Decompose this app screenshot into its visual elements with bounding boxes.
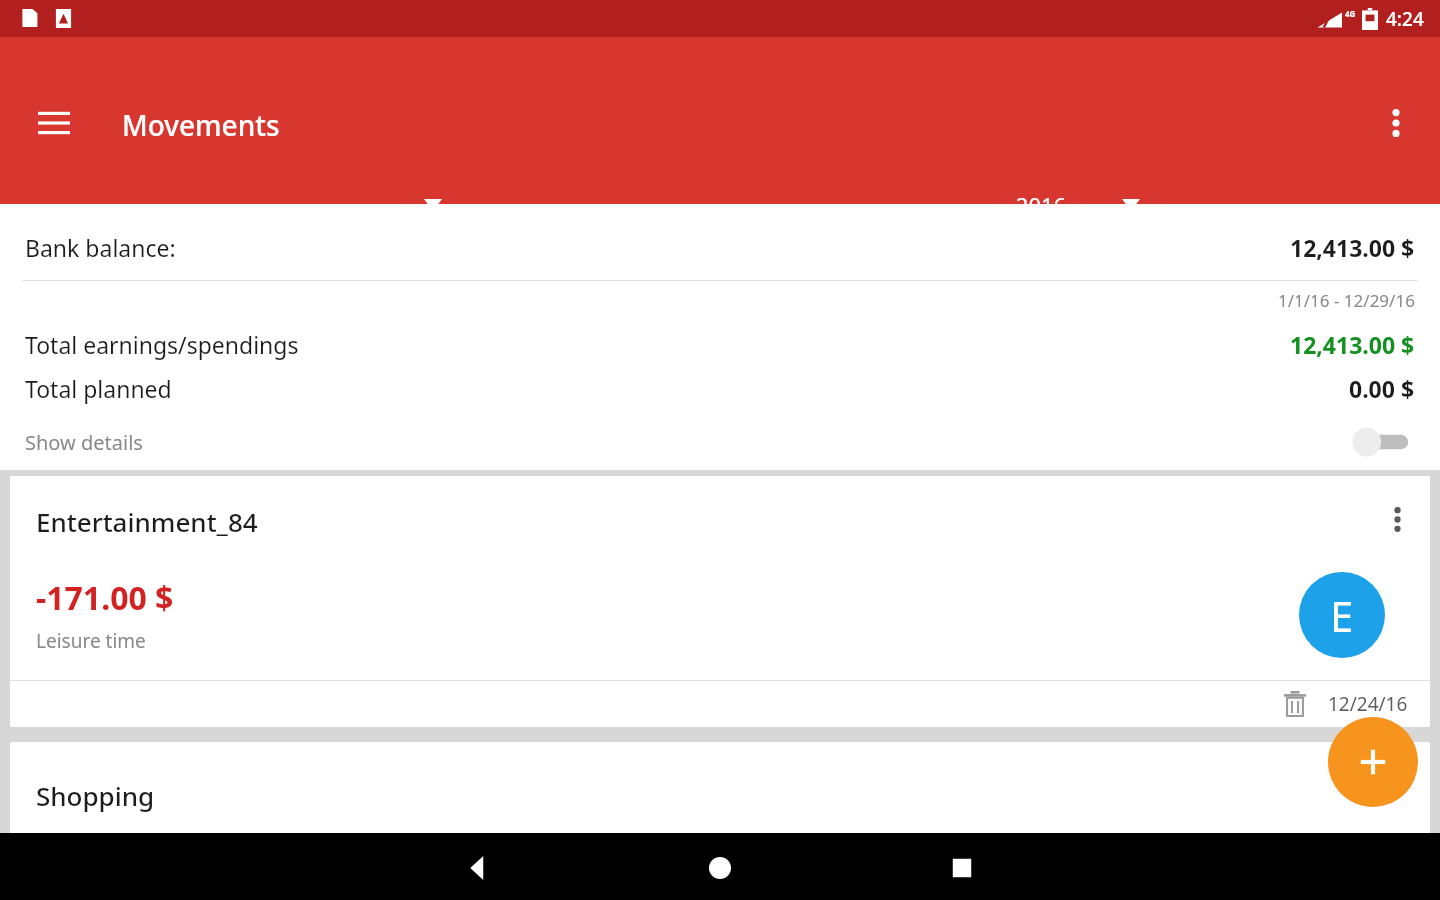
staticText: -171.00 $ — [36, 576, 174, 620]
staticText: Movements — [122, 106, 280, 144]
staticText: Shopping — [36, 778, 155, 813]
staticText: 4:24 — [1386, 6, 1424, 32]
button[interactable]: Back — [455, 845, 501, 891]
staticText: Total earnings/spendings — [25, 329, 299, 360]
staticText: E — [1330, 587, 1354, 644]
staticText: 2016 — [960, 190, 1122, 220]
staticText: 12,413.00 $ — [1290, 329, 1415, 360]
staticText: 0.00 $ — [1349, 373, 1415, 404]
staticText: Show details — [25, 429, 143, 456]
staticText: Entertainment_84 — [36, 504, 258, 539]
button[interactable]: Shopping — [10, 742, 1430, 862]
button[interactable]: Movement options — [1374, 496, 1420, 542]
staticText: - — [130, 192, 424, 219]
staticText: 12,413.00 $ — [1290, 232, 1415, 263]
staticText: Leisure time — [36, 628, 146, 654]
staticText: 12/24/16 — [1328, 691, 1408, 717]
staticText: Bank balance: — [25, 232, 176, 263]
button[interactable]: Recent apps — [939, 845, 985, 891]
staticText: 1/1/16 - 12/29/16 — [1278, 289, 1415, 312]
button[interactable]: - — [130, 182, 460, 228]
staticText: Total planned — [25, 373, 172, 404]
button[interactable]: Add movement — [1328, 717, 1418, 807]
button[interactable]: Open navigation menu — [26, 95, 82, 151]
button[interactable]: 2016 — [960, 182, 1160, 228]
button[interactable]: More options — [1368, 95, 1424, 151]
button[interactable]: Home — [697, 845, 743, 891]
staticText: 4G — [1345, 8, 1356, 19]
button[interactable]: Entertainment_84 — [10, 476, 1430, 727]
button[interactable]: Show details — [0, 418, 1440, 466]
